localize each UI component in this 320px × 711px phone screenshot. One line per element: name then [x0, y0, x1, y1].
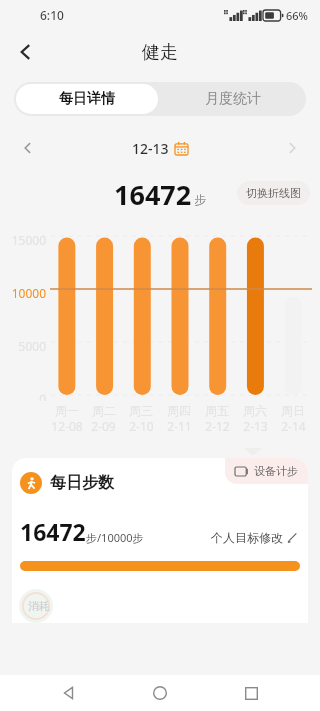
staticText: 每日步数 — [50, 473, 114, 493]
staticText: 周二 — [92, 403, 116, 418]
staticText: 2-12 — [205, 418, 230, 434]
button[interactable]: Next day — [278, 134, 306, 162]
staticText: 切换折线图 — [246, 186, 301, 200]
button[interactable]: Previous day — [14, 134, 42, 162]
staticText: 2-09 — [91, 418, 116, 434]
button[interactable]: Home — [138, 675, 182, 711]
button[interactable]: Recent apps — [229, 675, 273, 711]
staticText: 步 — [194, 192, 206, 207]
staticText: 个人目标修改 — [211, 530, 283, 545]
staticText: 10000 — [11, 285, 46, 301]
button[interactable]: Back — [47, 675, 91, 711]
staticText: 月度统计 — [205, 90, 261, 108]
staticText: 2-10 — [129, 418, 154, 434]
staticText: 健走 — [142, 41, 178, 64]
staticText: 周日 — [281, 403, 305, 418]
staticText: 设备计步 — [254, 464, 298, 478]
staticText: 12-08 — [51, 418, 83, 434]
staticText: 2-14 — [281, 418, 306, 434]
staticText: 每日详情 — [59, 90, 115, 108]
staticText: 消耗 — [28, 599, 50, 613]
staticText: 15000 — [11, 232, 46, 248]
staticText: 周五 — [205, 403, 229, 418]
staticText: 周三 — [129, 403, 153, 418]
button[interactable]: 每日详情 — [16, 84, 158, 114]
staticText: 16472 — [20, 516, 86, 547]
button[interactable]: 个人目标修改 — [209, 528, 300, 547]
button[interactable]: 设备计步 — [225, 458, 308, 484]
staticText: 周四 — [167, 403, 191, 418]
staticText: 5000 — [18, 338, 46, 354]
staticText: 16472 — [114, 176, 192, 210]
button[interactable]: 月度统计 — [160, 82, 306, 116]
button[interactable]: 切换折线图 — [237, 181, 310, 205]
button[interactable]: Back — [6, 32, 46, 72]
staticText: 66% — [286, 8, 308, 23]
staticText: 2-11 — [167, 418, 192, 434]
staticText: 6:10 — [40, 7, 64, 23]
staticText: 周六 — [243, 403, 267, 418]
staticText: 周一 — [55, 403, 79, 418]
staticText: 0 — [39, 391, 46, 401]
staticText: 步/10000步 — [86, 530, 144, 545]
staticText: 12-13 — [132, 139, 169, 158]
staticText: 2-13 — [243, 418, 268, 434]
